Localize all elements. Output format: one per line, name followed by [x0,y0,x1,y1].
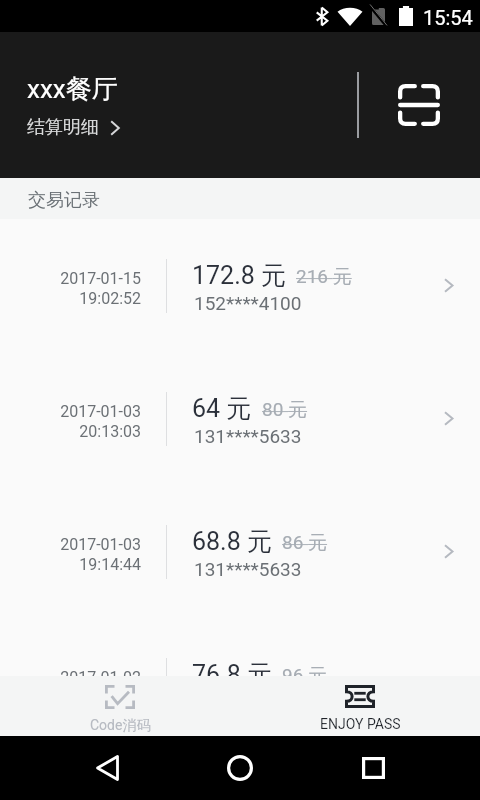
button[interactable]: 2017-01-03 [0,352,480,485]
staticText: 76.8 元 [192,659,272,690]
button[interactable]: Recent apps [350,745,396,791]
button[interactable]: 2017-01-03 [0,485,480,618]
staticText: 152****4100 [194,292,302,314]
staticText: xxx餐厅 [27,73,118,106]
staticText: 172.8 元 [192,260,286,291]
button[interactable]: Code消码 [0,676,240,736]
staticText: 19:14:44 [79,555,141,574]
staticText: 19:02:52 [79,289,141,308]
button[interactable]: Back [84,745,130,791]
staticText: 18:20:00 [79,688,141,707]
staticText: 80 元 [262,398,308,422]
staticText: ENJOY PASS [320,716,401,732]
staticText: 216 元 [296,265,352,289]
button[interactable]: 2017-01-02 [0,618,480,676]
staticText: 131****5633 [194,558,302,580]
staticText: 68.8 元 [192,526,272,557]
staticText: 131****5633 [194,425,302,447]
staticText: 交易记录 [28,189,100,212]
staticText: 结算明细 [27,116,99,139]
button[interactable]: ENJOY PASS [240,676,480,736]
staticText: 2017-01-02 [60,668,141,687]
staticText: Code消码 [90,717,151,735]
staticText: 96 元 [282,664,328,688]
staticText: 2017-01-15 [60,269,141,288]
button[interactable]: 结算明细 [27,116,120,139]
staticText: 20:13:03 [79,422,141,441]
button[interactable]: Scan QR code [391,77,447,133]
button[interactable]: 2017-01-15 [0,219,480,352]
staticText: 2017-01-03 [60,535,141,554]
staticText: 64 元 [192,393,252,424]
staticText: 86 元 [282,531,328,555]
staticText: 15:54 [423,6,473,29]
staticText: 2017-01-03 [60,402,141,421]
button[interactable]: Home [217,745,263,791]
